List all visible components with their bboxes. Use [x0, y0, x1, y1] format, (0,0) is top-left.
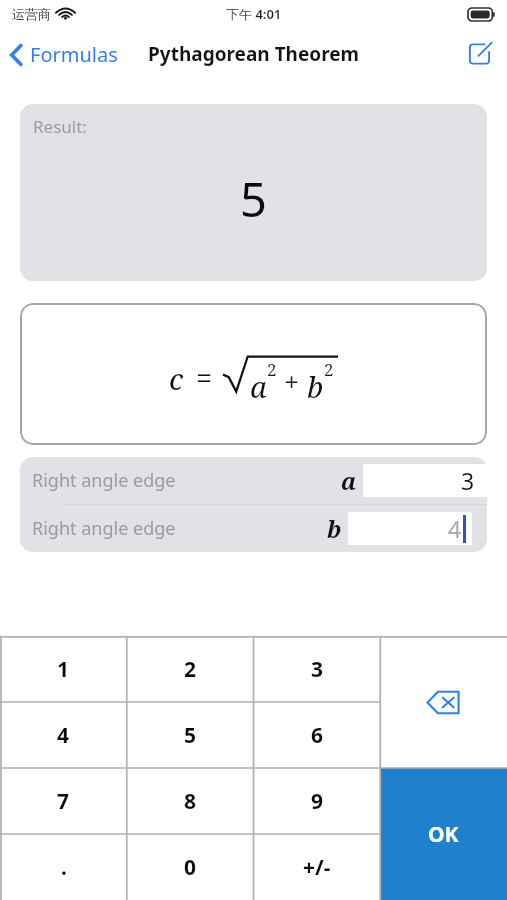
button[interactable]: 3 — [254, 636, 380, 702]
staticText: 下午 4:01 — [226, 5, 282, 23]
staticText: +/- — [303, 853, 331, 882]
staticText: Formulas — [30, 41, 118, 68]
staticText: 6 — [311, 721, 324, 750]
staticText: b — [327, 513, 342, 544]
staticText: Right angle edge — [32, 468, 176, 493]
staticText: 3 — [311, 655, 324, 684]
staticText: . — [61, 853, 67, 882]
staticText: 7 — [57, 787, 70, 816]
button[interactable]: . — [0, 834, 127, 900]
staticText: 4 — [57, 721, 70, 750]
staticText: a — [341, 465, 357, 496]
staticText: 3 — [461, 465, 475, 496]
staticText: Result: — [33, 115, 87, 138]
staticText: + — [284, 363, 300, 400]
button[interactable]: OK — [380, 768, 507, 900]
staticText: 运营商 — [12, 6, 51, 22]
staticText: 4 — [448, 513, 462, 544]
button[interactable]: Right angle edge — [20, 457, 487, 504]
staticText: 2 — [184, 655, 197, 684]
button[interactable]: c — [20, 303, 487, 445]
button[interactable]: Backspace — [380, 636, 507, 768]
button[interactable]: Result: — [20, 104, 487, 281]
button[interactable]: +/- — [254, 834, 380, 900]
button[interactable]: 0 — [127, 834, 254, 900]
staticText: 2 — [267, 358, 277, 381]
button[interactable]: 1 — [0, 636, 127, 702]
button[interactable]: 5 — [127, 702, 254, 768]
button[interactable]: 8 — [127, 768, 254, 834]
staticText: 1 — [57, 655, 70, 684]
staticText: 8 — [184, 787, 197, 816]
staticText: a — [250, 367, 267, 406]
button[interactable]: 2 — [127, 636, 254, 702]
staticText: Right angle edge — [32, 516, 176, 541]
staticText: c — [169, 359, 184, 398]
staticText: 2 — [324, 358, 334, 381]
staticText: Pythagorean Theorem — [148, 41, 360, 67]
staticText: = — [196, 358, 213, 397]
button[interactable]: 9 — [254, 768, 380, 834]
staticText: 5 — [240, 167, 267, 231]
button[interactable]: Right angle edge — [20, 505, 487, 552]
staticText: 9 — [311, 787, 324, 816]
staticText: 0 — [184, 853, 197, 882]
button[interactable]: 7 — [0, 768, 127, 834]
button[interactable]: 6 — [254, 702, 380, 768]
button[interactable]: Formulas — [0, 35, 128, 74]
staticText: OK — [428, 820, 459, 849]
button[interactable]: 4 — [0, 702, 127, 768]
staticText: b — [307, 367, 324, 406]
button[interactable]: Edit — [453, 30, 507, 78]
staticText: 5 — [184, 721, 197, 750]
